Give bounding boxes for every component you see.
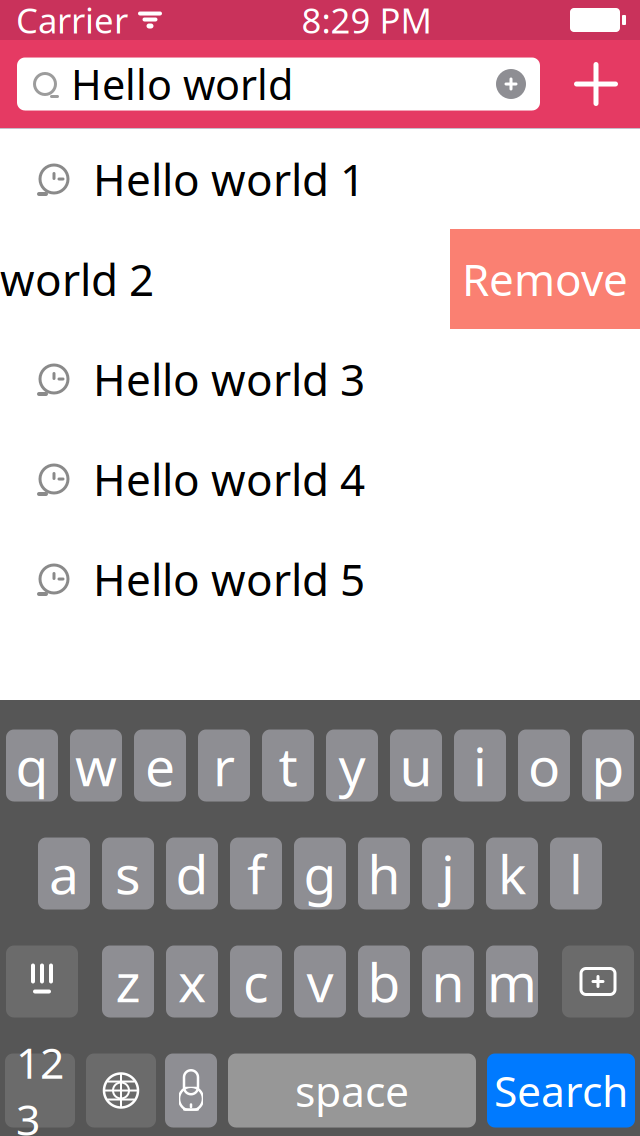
staticText: n	[431, 946, 464, 1017]
staticText: a	[49, 838, 79, 909]
staticText: l	[569, 838, 583, 909]
button[interactable]: u	[390, 729, 442, 801]
button[interactable]: c	[230, 945, 282, 1017]
staticText: p	[591, 730, 624, 801]
button[interactable]: m	[486, 945, 538, 1017]
button[interactable]: Remove	[450, 229, 640, 329]
staticText: Hello world 4	[93, 450, 365, 508]
button[interactable]: q	[6, 729, 58, 801]
staticText: z	[115, 946, 140, 1017]
staticText: Carrier	[16, 0, 128, 43]
button[interactable]: j	[422, 837, 474, 909]
staticText: b	[367, 946, 400, 1017]
staticText: w	[75, 730, 117, 801]
staticText: r	[213, 730, 235, 801]
button[interactable]: o	[518, 729, 570, 801]
staticText: j	[441, 838, 455, 909]
staticText: 8:29 PM	[301, 0, 431, 43]
button[interactable]: Shift	[6, 945, 78, 1017]
button[interactable]: w	[70, 729, 122, 801]
staticText: x	[178, 946, 206, 1017]
button[interactable]: v	[294, 945, 346, 1017]
button[interactable]: Dictate	[165, 1053, 217, 1127]
button[interactable]: n	[422, 945, 474, 1017]
button[interactable]: h	[358, 837, 410, 909]
button[interactable]: b	[358, 945, 410, 1017]
staticText: Hello world	[71, 57, 293, 111]
button[interactable]: Clear text	[496, 69, 526, 99]
staticText: Hello world 5	[93, 550, 365, 608]
staticText: h	[367, 838, 400, 909]
staticText: k	[498, 838, 526, 909]
staticText: f	[247, 838, 265, 909]
staticText: i	[473, 730, 487, 801]
button[interactable]: a	[38, 837, 90, 909]
button[interactable]: p	[582, 729, 634, 801]
button[interactable]: i	[454, 729, 506, 801]
button[interactable]: r	[198, 729, 250, 801]
button[interactable]: Hello world 4	[0, 429, 640, 529]
staticText: g	[303, 838, 336, 909]
staticText: m	[487, 946, 537, 1017]
staticText: s	[115, 838, 141, 909]
staticText: world 2	[0, 250, 154, 308]
button[interactable]: l	[550, 837, 602, 909]
staticText: o	[528, 730, 560, 801]
staticText: u	[399, 730, 432, 801]
button[interactable]: space	[228, 1053, 476, 1127]
staticText: 123	[16, 1034, 64, 1136]
button[interactable]: k	[486, 837, 538, 909]
button[interactable]: 123	[5, 1053, 75, 1127]
button[interactable]: t	[262, 729, 314, 801]
staticText: Remove	[462, 250, 628, 308]
staticText: v	[306, 946, 333, 1017]
staticText: q	[15, 730, 48, 801]
staticText: Search	[494, 1062, 628, 1119]
button[interactable]: z	[102, 945, 154, 1017]
button[interactable]: Cancel search	[568, 56, 624, 112]
button[interactable]: Hello world 1	[0, 129, 640, 229]
staticText: t	[278, 730, 297, 801]
button[interactable]: f	[230, 837, 282, 909]
button[interactable]: g	[294, 837, 346, 909]
staticText: Hello world 1	[93, 150, 365, 208]
staticText: c	[243, 946, 269, 1017]
button[interactable]: Hello world 5	[0, 529, 640, 629]
button[interactable]: Search	[487, 1053, 635, 1127]
button[interactable]: e	[134, 729, 186, 801]
staticText: e	[145, 730, 175, 801]
button[interactable]: x	[166, 945, 218, 1017]
button[interactable]: Delete	[562, 945, 634, 1017]
button[interactable]: Next keyboard	[86, 1053, 156, 1127]
staticText: y	[338, 730, 365, 801]
button[interactable]: d	[166, 837, 218, 909]
staticText: Hello world 3	[93, 350, 365, 408]
staticText: space	[295, 1062, 409, 1119]
button[interactable]: Hello world 3	[0, 329, 640, 429]
button[interactable]: s	[102, 837, 154, 909]
staticText: d	[175, 838, 208, 909]
button[interactable]: y	[326, 729, 378, 801]
